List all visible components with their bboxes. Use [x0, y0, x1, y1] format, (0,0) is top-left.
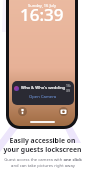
staticText: Guest access the camera with one click a… [4, 157, 82, 169]
staticText: Open Camera [29, 94, 57, 100]
staticText: Sunday, 16 July [28, 3, 57, 8]
staticText: 16:39 [20, 3, 64, 26]
staticText: 16:39 [66, 83, 72, 93]
button[interactable]: Who & Who's wedding [12, 81, 74, 105]
button[interactable]: Flashlight [18, 107, 27, 116]
staticText: Easily accessible on your guests lockscr… [3, 136, 82, 154]
button[interactable]: Camera [59, 107, 68, 116]
staticText: Who & Who's wedding [21, 85, 66, 91]
